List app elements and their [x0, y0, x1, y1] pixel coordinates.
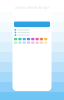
staticText: Choose a theme for your	[14, 6, 49, 9]
